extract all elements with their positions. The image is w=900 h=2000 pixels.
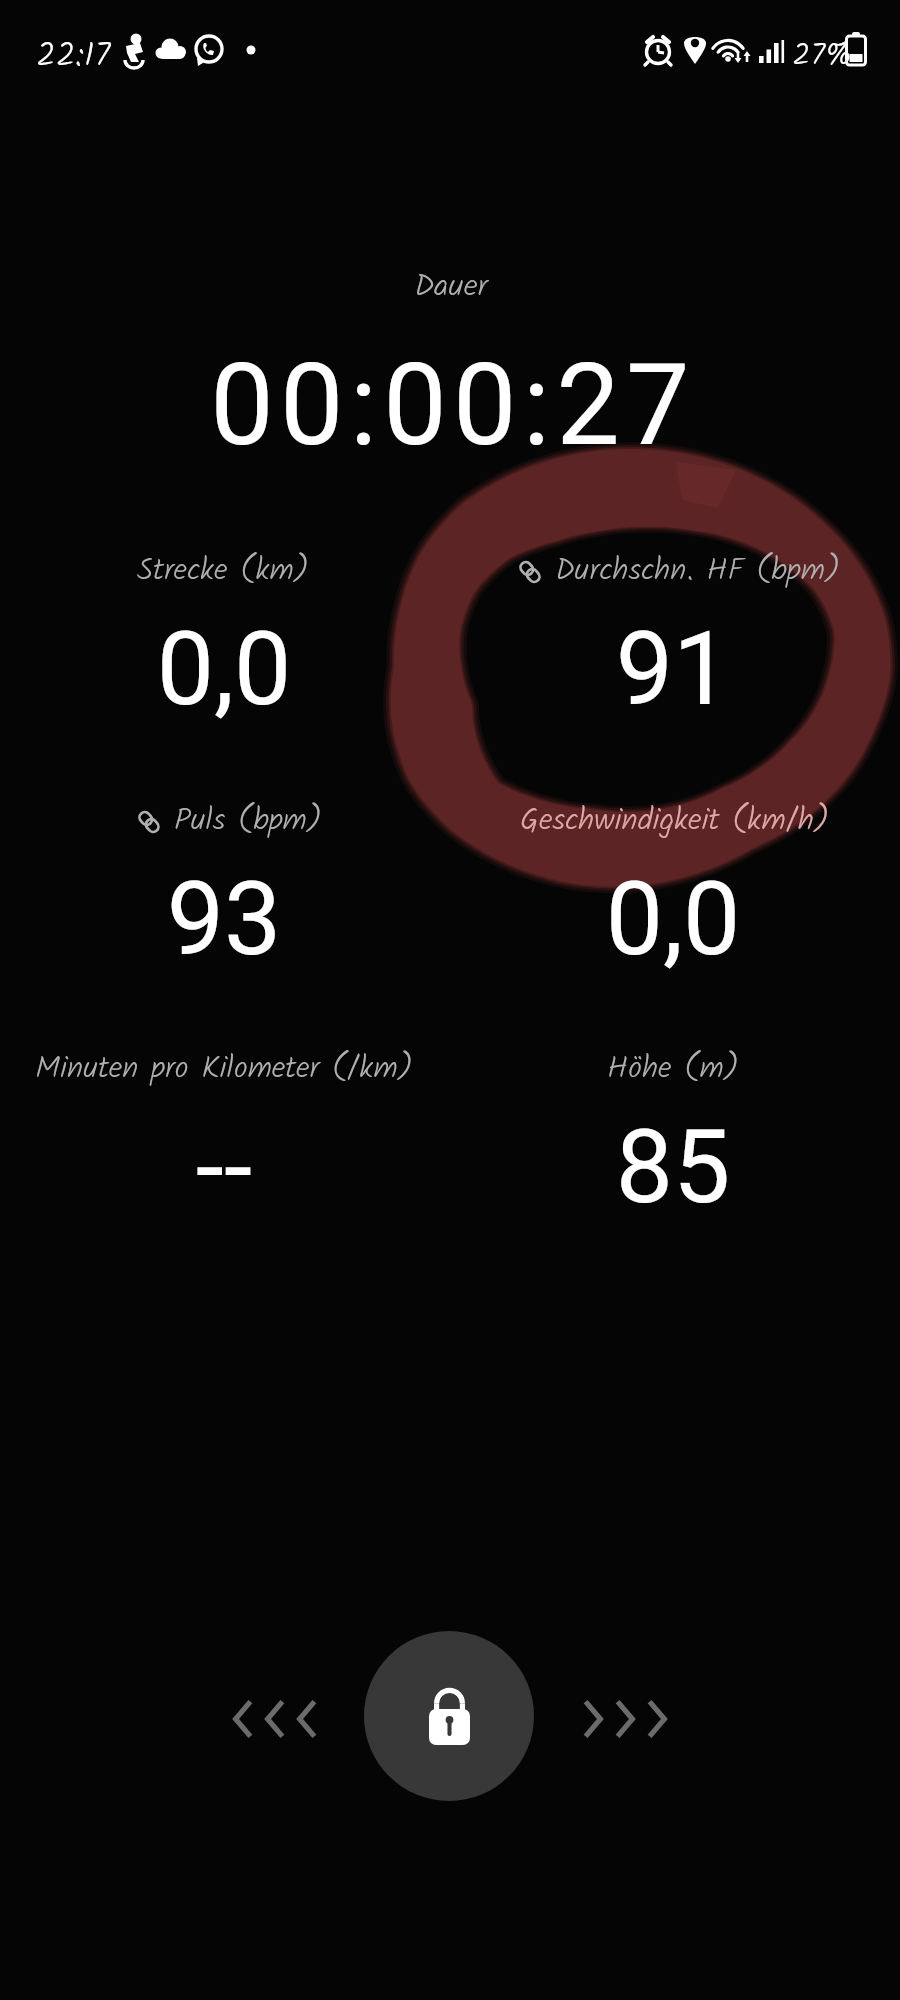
staticText: Strecke (km) xyxy=(137,547,310,596)
staticText: Höhe (m) xyxy=(607,1045,739,1094)
staticText: 22:17 xyxy=(36,30,111,84)
staticText: 00:00:27 xyxy=(103,339,803,471)
staticText: Puls (bpm) xyxy=(174,797,323,846)
staticText: Dauer xyxy=(414,262,488,313)
staticText: Geschwindigkeit (km/h) xyxy=(520,797,830,846)
button[interactable]: Rewind xyxy=(202,1668,348,1768)
staticText: 85 xyxy=(323,1107,900,1227)
staticText: 0,0 xyxy=(323,859,900,979)
staticText: 91 xyxy=(323,609,900,729)
button[interactable]: Lock screen xyxy=(364,1631,534,1801)
staticText: Minuten pro Kilometer (/km) xyxy=(35,1045,413,1094)
staticText: 27% xyxy=(792,31,852,82)
button[interactable]: Forward xyxy=(552,1668,698,1768)
staticText: Durchschn. HF (bpm) xyxy=(555,547,841,596)
staticText: -- xyxy=(0,1107,574,1227)
staticText: 93 xyxy=(0,859,574,979)
staticText: 0,0 xyxy=(0,609,574,729)
